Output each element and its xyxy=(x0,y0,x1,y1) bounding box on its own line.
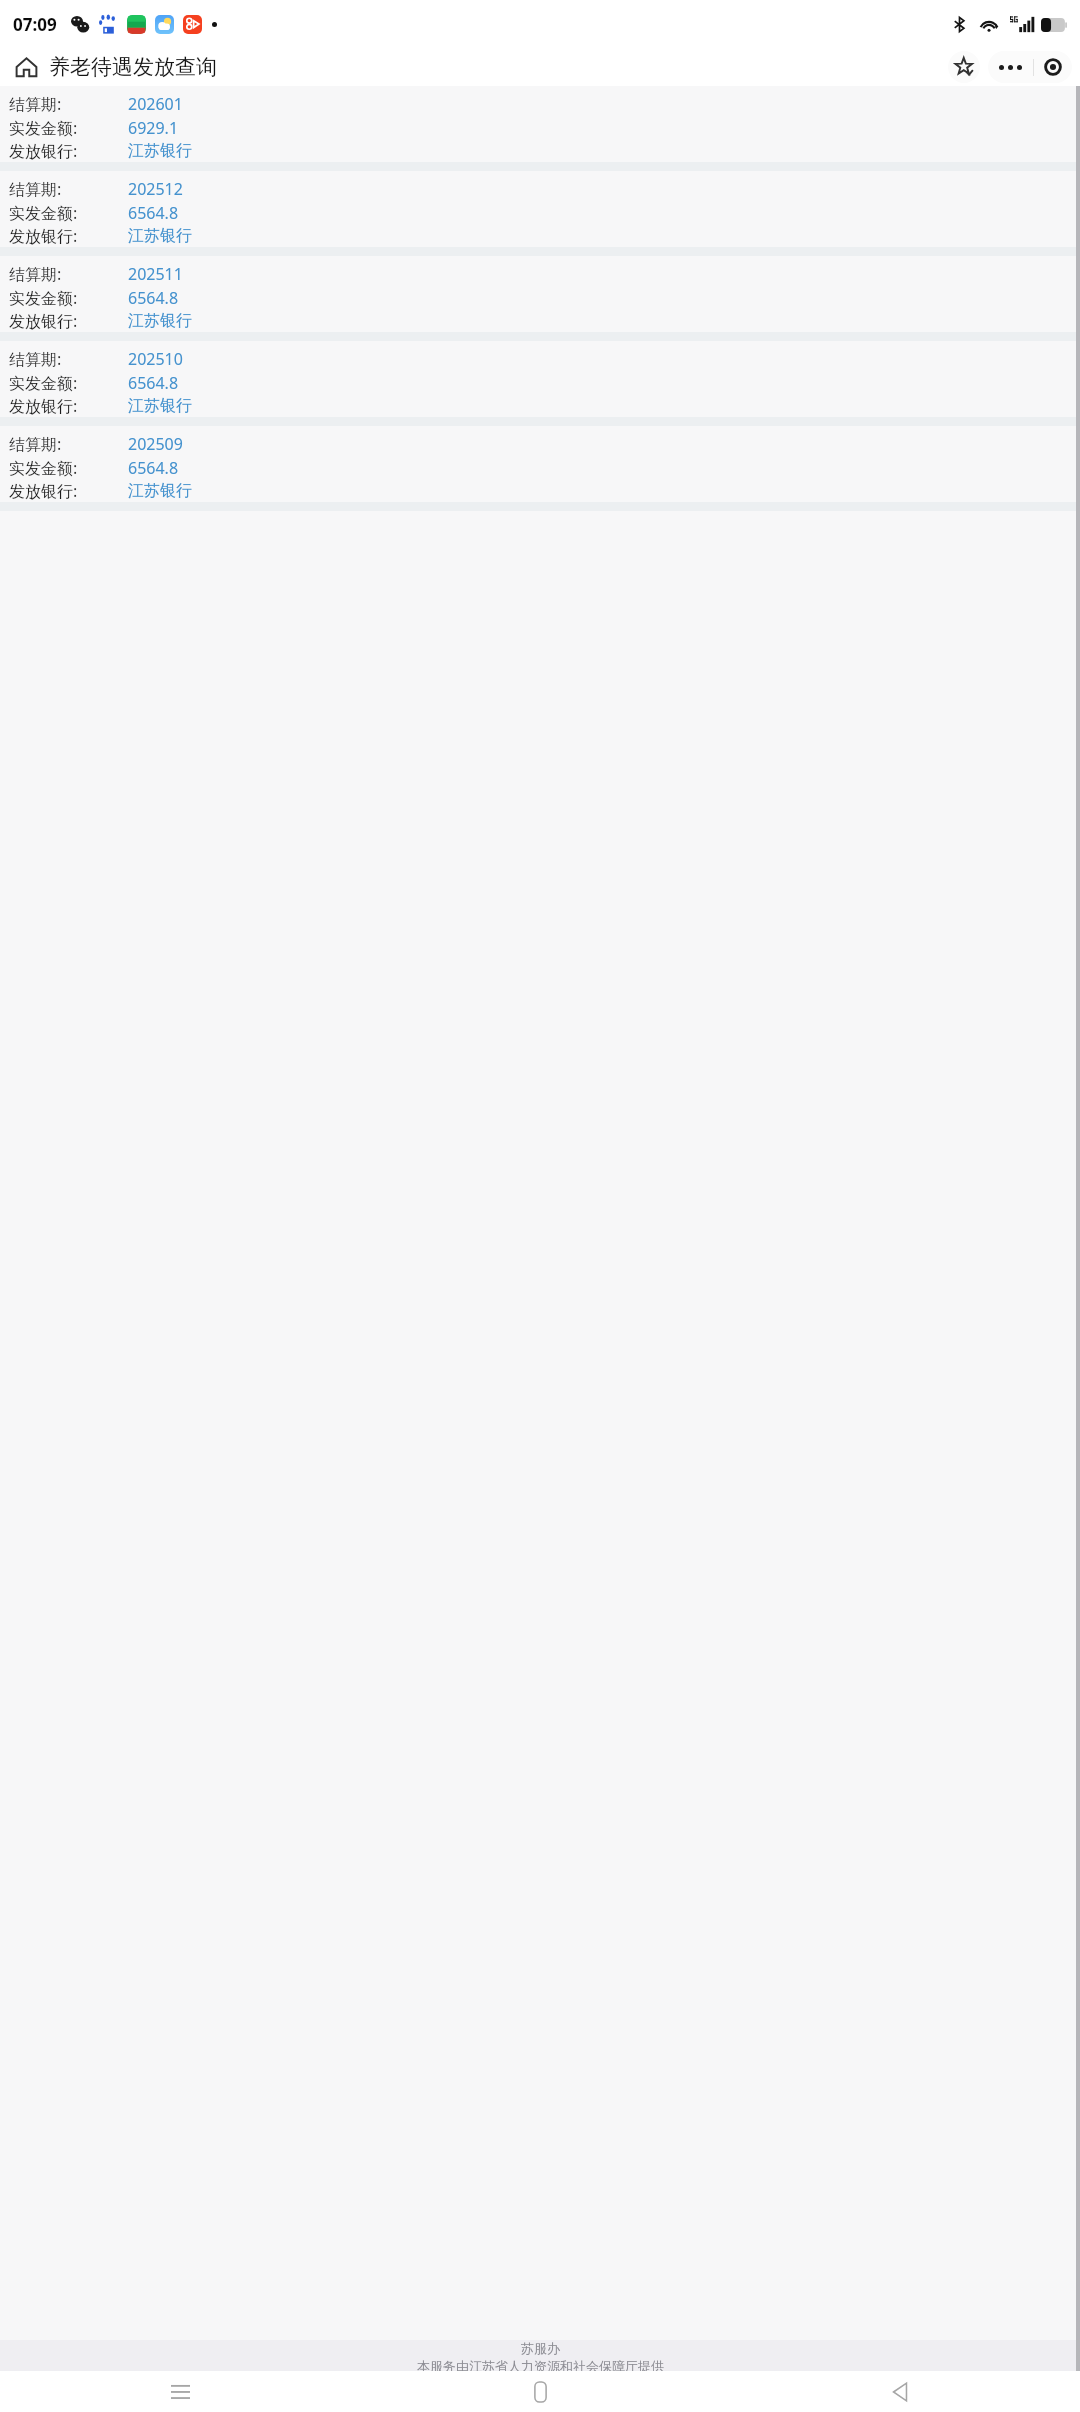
staticText: 江苏银行 xyxy=(128,481,192,501)
staticText: 本服务由江苏省人力资源和社会保障厅提供 xyxy=(417,2358,664,2371)
staticText: 实发金额: xyxy=(9,202,78,224)
staticText: 202512 xyxy=(128,178,183,200)
staticText: 实发金额: xyxy=(9,372,78,394)
button[interactable]: Home xyxy=(360,2371,720,2412)
staticText: 发放银行: xyxy=(9,395,78,417)
staticText: 养老待遇发放查询 xyxy=(49,54,217,80)
staticText: 实发金额: xyxy=(9,117,78,139)
staticText: 6564.8 xyxy=(128,372,179,394)
staticText: 结算期: xyxy=(9,433,62,455)
button[interactable]: Favorite xyxy=(948,51,980,83)
staticText: 实发金额: xyxy=(9,287,78,309)
staticText: 实发金额: xyxy=(9,457,78,479)
staticText: 6929.1 xyxy=(128,117,179,139)
staticText: 结算期: xyxy=(9,263,62,285)
staticText: 结算期: xyxy=(9,348,62,370)
button[interactable]: Back xyxy=(720,2371,1080,2412)
button[interactable]: 结算期: xyxy=(0,86,1080,162)
staticText: 202509 xyxy=(128,433,183,455)
staticText: 结算期: xyxy=(9,178,62,200)
staticText: 江苏银行 xyxy=(128,141,192,161)
button[interactable]: 结算期: xyxy=(0,256,1080,332)
staticText: 结算期: xyxy=(9,93,62,115)
staticText: 202511 xyxy=(128,263,183,285)
button[interactable]: 结算期: xyxy=(0,341,1080,417)
staticText: 发放银行: xyxy=(9,225,78,247)
button[interactable]: More xyxy=(988,51,1033,83)
staticText: 发放银行: xyxy=(9,310,78,332)
staticText: 6564.8 xyxy=(128,202,179,224)
staticText: 发放银行: xyxy=(9,140,78,162)
staticText: 6564.8 xyxy=(128,457,179,479)
staticText: 202510 xyxy=(128,348,183,370)
staticText: 07:09 xyxy=(13,13,57,36)
staticText: 发放银行: xyxy=(9,480,78,502)
staticText: 江苏银行 xyxy=(128,226,192,246)
button[interactable]: Recents xyxy=(0,2371,360,2412)
staticText: 江苏银行 xyxy=(128,311,192,331)
staticText: 苏服办 xyxy=(521,2340,560,2356)
button[interactable]: 结算期: xyxy=(0,426,1080,502)
staticText: 江苏银行 xyxy=(128,396,192,416)
button[interactable]: Close xyxy=(1034,51,1072,83)
staticText: 202601 xyxy=(128,93,183,115)
button[interactable]: 结算期: xyxy=(0,171,1080,247)
button[interactable]: Home xyxy=(9,50,43,84)
staticText: 6564.8 xyxy=(128,287,179,309)
